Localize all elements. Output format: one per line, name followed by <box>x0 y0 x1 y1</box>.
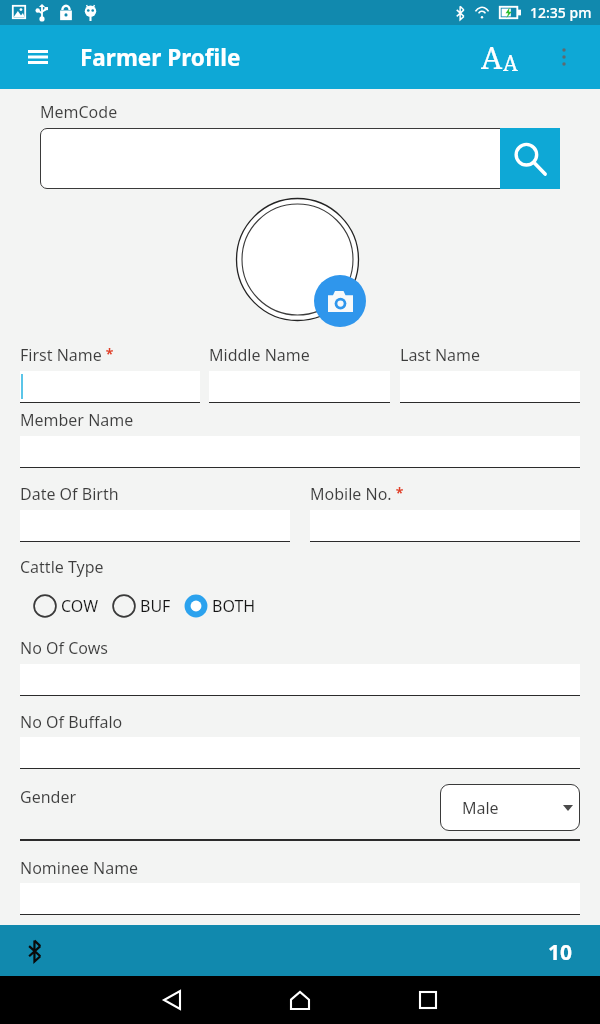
button[interactable]: Take photo <box>314 275 366 327</box>
staticText: MemCode <box>40 101 118 123</box>
button[interactable] <box>20 510 290 542</box>
staticText: Male <box>462 797 499 819</box>
button[interactable] <box>20 436 580 468</box>
staticText: Mobile No. <box>310 483 392 505</box>
staticText: First Name <box>20 344 102 366</box>
staticText: * <box>102 344 114 363</box>
staticText: Nominee Name <box>20 857 139 879</box>
staticText: BUF <box>140 595 171 617</box>
staticText: Cattle Type <box>20 556 104 578</box>
staticText: 10 <box>548 938 573 967</box>
staticText: Member Name <box>20 409 134 431</box>
button[interactable] <box>20 737 580 769</box>
staticText: No Of Cows <box>20 637 108 659</box>
staticText: Gender <box>20 786 77 808</box>
button[interactable] <box>20 664 580 696</box>
button[interactable]: BUF <box>109 590 173 622</box>
button[interactable]: COW <box>30 590 101 622</box>
button[interactable] <box>20 883 580 915</box>
staticText: A <box>503 49 518 78</box>
button[interactable]: BOTH <box>181 590 258 622</box>
button[interactable] <box>209 371 390 403</box>
staticText: A <box>481 37 503 78</box>
button[interactable]: Search <box>500 128 560 189</box>
staticText: No Of Buffalo <box>20 711 123 733</box>
button[interactable] <box>40 128 560 189</box>
staticText: Farmer Profile <box>80 42 241 73</box>
staticText: Last Name <box>400 344 481 366</box>
staticText: COW <box>61 595 99 617</box>
staticText: BOTH <box>212 595 256 617</box>
staticText: * <box>392 483 404 502</box>
button[interactable]: Male <box>440 784 580 831</box>
button[interactable]: Change text size <box>475 33 523 81</box>
staticText: 12:35 pm <box>530 3 592 22</box>
button[interactable] <box>20 371 200 403</box>
button[interactable]: Recent apps <box>404 976 452 1024</box>
button[interactable]: More options <box>545 38 583 76</box>
button[interactable]: Navigation menu <box>16 36 58 78</box>
staticText: Date Of Birth <box>20 483 119 505</box>
staticText: Middle Name <box>209 344 310 366</box>
button[interactable] <box>400 371 580 403</box>
button[interactable]: Home <box>276 976 324 1024</box>
button[interactable] <box>310 510 580 542</box>
button[interactable]: Back <box>148 976 196 1024</box>
